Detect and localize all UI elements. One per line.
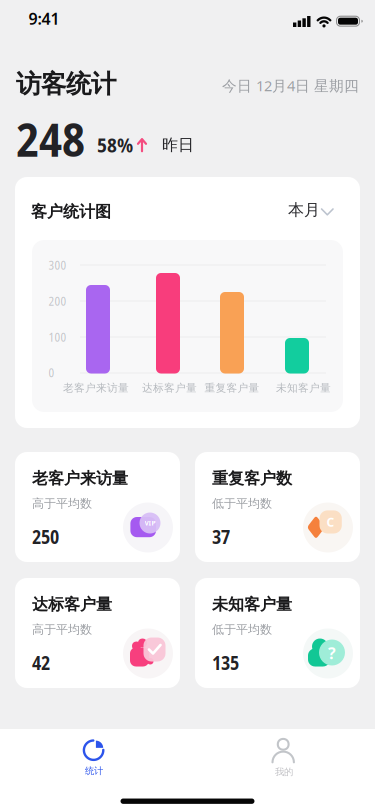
staticText: 9:41 bbox=[28, 8, 59, 29]
staticText: 今日 12月4日 星期四 bbox=[222, 76, 359, 95]
staticText: 昨日 bbox=[162, 135, 194, 155]
button[interactable]: 我的 bbox=[234, 730, 328, 786]
button[interactable]: 未知客户量 bbox=[195, 578, 360, 688]
staticText: 100 bbox=[48, 329, 66, 345]
staticText: 未知客户量 bbox=[276, 381, 331, 394]
staticText: 37 bbox=[212, 524, 230, 549]
staticText: 135 bbox=[212, 650, 239, 675]
staticText: ? bbox=[328, 642, 336, 664]
button[interactable]: 达标客户量 bbox=[15, 578, 180, 688]
staticText: 250 bbox=[32, 524, 59, 549]
staticText: 42 bbox=[32, 650, 50, 675]
staticText: 200 bbox=[48, 293, 66, 309]
staticText: 老客户来访量 bbox=[63, 381, 129, 394]
staticText: 0 bbox=[48, 364, 54, 381]
staticText: 客户统计图 bbox=[31, 202, 111, 222]
staticText: 访客统计 bbox=[16, 68, 116, 99]
staticText: 达标客户量 bbox=[32, 595, 112, 614]
staticText: VIP bbox=[144, 519, 155, 527]
staticText: 58% bbox=[97, 131, 133, 158]
staticText: 300 bbox=[48, 257, 66, 273]
staticText: 统计 bbox=[85, 765, 103, 777]
staticText: 低于平均数 bbox=[212, 496, 272, 511]
staticText: C bbox=[326, 514, 334, 530]
staticText: 我的 bbox=[275, 766, 293, 778]
staticText: 高于平均数 bbox=[32, 496, 92, 511]
staticText: 本月 bbox=[288, 200, 320, 220]
staticText: 低于平均数 bbox=[212, 622, 272, 637]
button[interactable]: 统计 bbox=[47, 730, 141, 786]
staticText: 248 bbox=[16, 107, 85, 170]
button[interactable]: 老客户来访量 bbox=[15, 452, 180, 562]
staticText: 达标客户量 bbox=[142, 381, 197, 394]
staticText: 高于平均数 bbox=[32, 622, 92, 637]
button[interactable]: 本月 bbox=[288, 190, 336, 230]
staticText: 老客户来访量 bbox=[32, 469, 128, 488]
button[interactable]: 重复客户数 bbox=[195, 452, 360, 562]
staticText: 重复客户量 bbox=[204, 381, 259, 394]
staticText: 未知客户量 bbox=[212, 595, 292, 614]
staticText: 重复客户数 bbox=[212, 469, 292, 488]
